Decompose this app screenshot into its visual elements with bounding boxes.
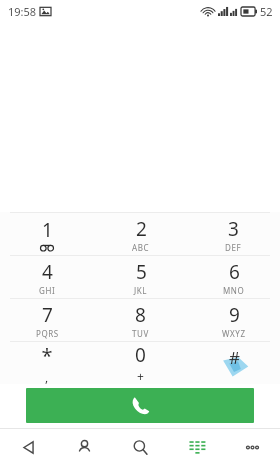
- staticText: 4: [42, 259, 53, 285]
- staticText: MNO: [223, 285, 245, 296]
- staticText: TUV: [132, 328, 149, 339]
- staticText: 9: [229, 302, 240, 328]
- button[interactable]: Back: [0, 429, 56, 465]
- staticText: 3: [228, 216, 239, 242]
- staticText: 5: [136, 259, 147, 285]
- staticText: #: [229, 346, 240, 369]
- staticText: 2: [136, 216, 147, 242]
- button[interactable]: More options: [224, 429, 280, 465]
- button[interactable]: 8: [94, 299, 187, 341]
- button[interactable]: Search: [112, 429, 168, 465]
- button[interactable]: 9: [187, 299, 280, 341]
- staticText: ABC: [132, 242, 150, 253]
- button[interactable]: Dialpad: [168, 429, 224, 465]
- button[interactable]: Call: [26, 388, 254, 423]
- staticText: 1: [42, 217, 53, 243]
- staticText: ,: [45, 369, 49, 384]
- staticText: *: [41, 342, 53, 369]
- button[interactable]: 2: [94, 213, 187, 255]
- button[interactable]: *: [0, 342, 94, 384]
- button[interactable]: 7: [0, 299, 94, 341]
- button[interactable]: 4: [0, 256, 94, 298]
- button[interactable]: #: [187, 342, 280, 384]
- staticText: 52: [260, 4, 273, 19]
- staticText: 7: [42, 302, 53, 328]
- button[interactable]: 0: [94, 342, 187, 384]
- button[interactable]: 3: [187, 213, 280, 255]
- staticText: +: [137, 368, 144, 384]
- staticText: 6: [229, 259, 240, 285]
- button[interactable]: 5: [94, 256, 187, 298]
- staticText: DEF: [225, 242, 242, 253]
- staticText: WXYZ: [222, 328, 246, 339]
- button[interactable]: 6: [187, 256, 280, 298]
- staticText: 19:58: [8, 4, 37, 19]
- button[interactable]: 1: [0, 213, 94, 255]
- staticText: GHI: [39, 285, 56, 296]
- staticText: 0: [135, 342, 146, 368]
- staticText: 8: [135, 302, 146, 328]
- button[interactable]: Contacts: [56, 429, 112, 465]
- staticText: JKL: [134, 285, 148, 296]
- staticText: PQRS: [36, 328, 59, 339]
